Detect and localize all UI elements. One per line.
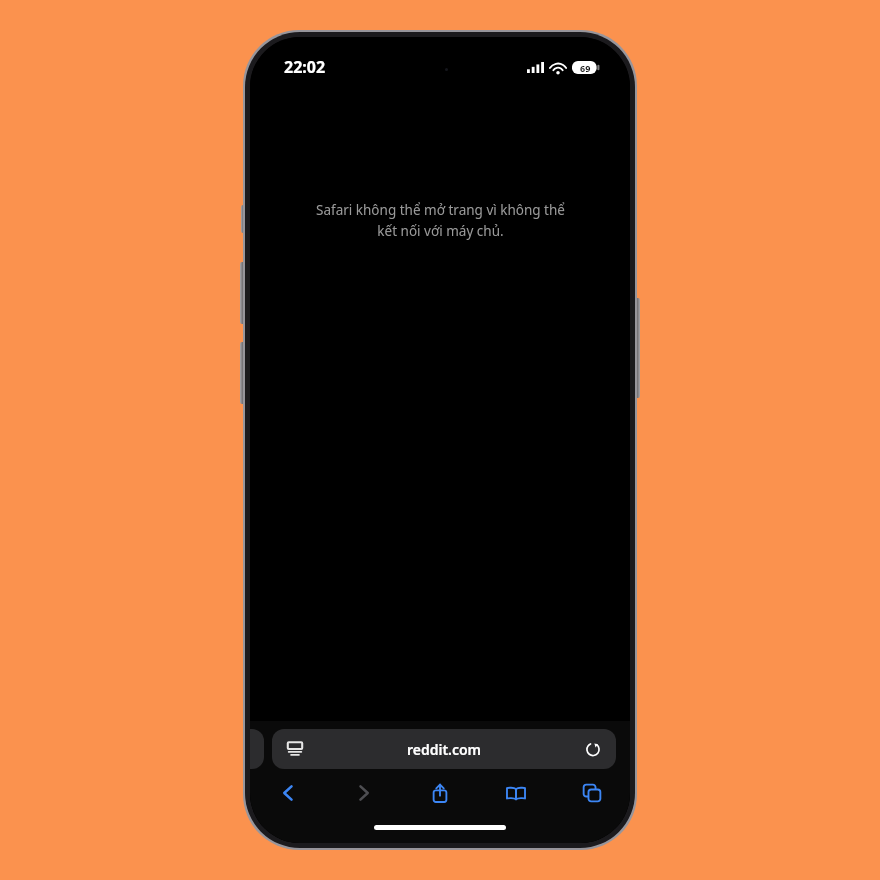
button[interactable]: Page settings	[282, 736, 308, 762]
staticText: 22:02	[284, 56, 326, 78]
button[interactable]: Reload	[580, 736, 606, 762]
button[interactable]: Back	[266, 771, 310, 815]
staticText: 69	[580, 62, 591, 74]
button[interactable]: Page settings	[272, 729, 616, 769]
button[interactable]: Share	[418, 771, 462, 815]
staticText: Safari không thể mở trang vì không thể k…	[316, 201, 565, 240]
button[interactable]: Forward	[342, 771, 386, 815]
button[interactable]: Tabs	[570, 771, 614, 815]
button[interactable]: Bookmarks	[494, 771, 538, 815]
staticText: reddit.com	[308, 740, 580, 759]
